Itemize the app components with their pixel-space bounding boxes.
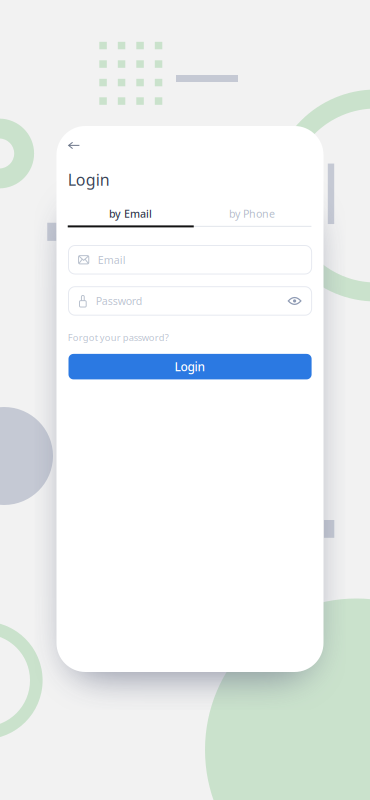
- staticText: Login: [175, 359, 206, 375]
- staticText: Password: [96, 294, 143, 308]
- button[interactable]: by Phone: [193, 201, 311, 225]
- button[interactable]: Back: [61, 135, 87, 156]
- staticText: Login: [68, 169, 110, 190]
- button[interactable]: Login: [68, 354, 312, 379]
- staticText: Email: [98, 253, 126, 267]
- staticText: by Phone: [229, 206, 275, 221]
- staticText: Forgot your password?: [68, 331, 169, 344]
- staticText: by Email: [109, 206, 152, 221]
- button[interactable]: by Email: [67, 201, 193, 225]
- button[interactable]: Show password: [284, 292, 306, 310]
- button[interactable]: Forgot your password?: [68, 330, 188, 344]
